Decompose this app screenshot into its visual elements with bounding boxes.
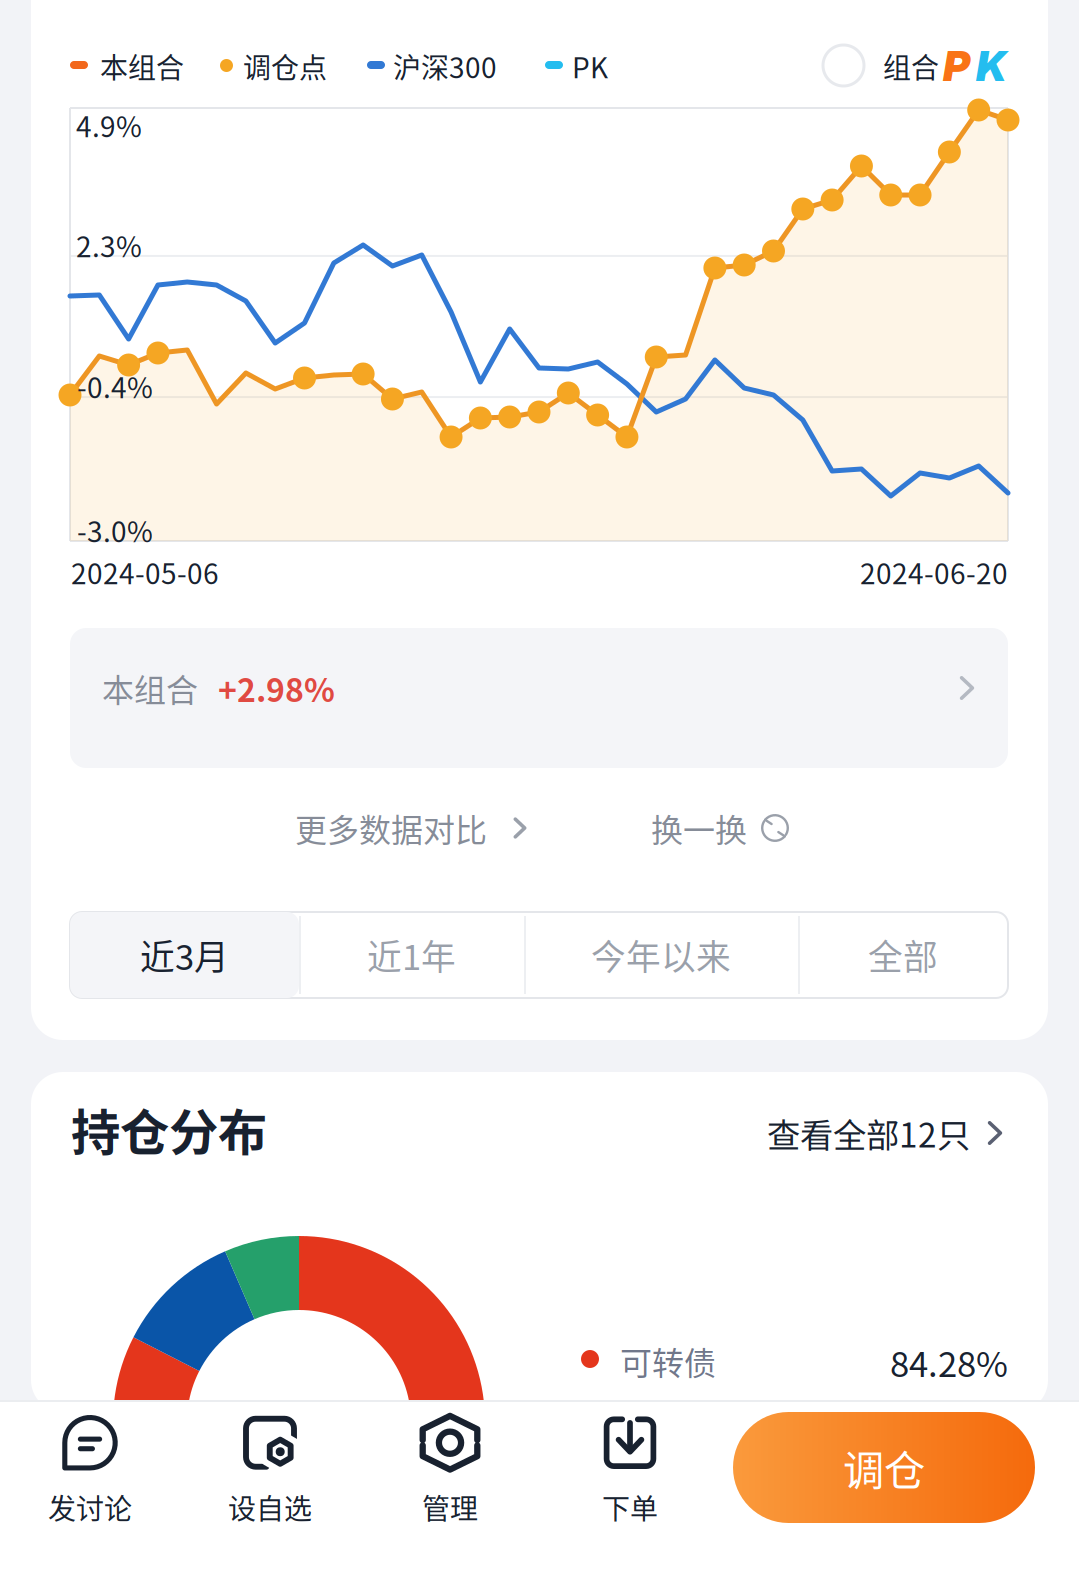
- button[interactable]: 本组合: [70, 628, 1008, 768]
- staticText: 下单: [602, 1487, 658, 1527]
- button[interactable]: 设自选: [180, 1408, 360, 1532]
- button[interactable]: 全部: [798, 912, 1008, 998]
- staticText: 管理: [422, 1487, 478, 1527]
- staticText: 2.3%: [76, 225, 142, 265]
- button[interactable]: 发讨论: [0, 1408, 180, 1532]
- staticText: 更多数据对比: [295, 805, 487, 851]
- staticText: 本组合: [102, 665, 198, 711]
- staticText: 换一换: [651, 805, 747, 851]
- staticText: +2.98%: [218, 665, 335, 711]
- staticText: 组合: [883, 46, 939, 86]
- staticText: -0.4%: [77, 366, 153, 406]
- staticText: 全部: [868, 930, 938, 980]
- staticText: 持仓分布: [71, 1093, 267, 1165]
- staticText: 设自选: [228, 1487, 312, 1527]
- staticText: 可转债: [620, 1338, 716, 1384]
- staticText: P: [943, 41, 970, 91]
- staticText: 今年以来: [591, 930, 731, 980]
- button[interactable]: 今年以来: [524, 912, 798, 998]
- staticText: 4.9%: [76, 105, 142, 145]
- button[interactable]: 更多数据对比: [283, 798, 545, 858]
- button[interactable]: 查看全部12只: [680, 1105, 1010, 1161]
- staticText: 2024-05-06: [71, 552, 219, 592]
- staticText: K: [976, 41, 1006, 91]
- button[interactable]: 换一换: [645, 798, 797, 858]
- button[interactable]: 近1年: [299, 912, 524, 998]
- button[interactable]: 下单: [540, 1408, 720, 1532]
- staticText: PK: [572, 46, 608, 86]
- button[interactable]: 调仓: [733, 1412, 1035, 1523]
- staticText: 查看全部12只: [767, 1109, 970, 1157]
- staticText: 84.28%: [890, 1337, 1008, 1387]
- staticText: 沪深300: [393, 46, 497, 86]
- staticText: 2024-06-20: [860, 552, 1008, 592]
- button[interactable]: 组合: [0, 0, 1079, 110]
- staticText: 近1年: [367, 930, 456, 980]
- button[interactable]: 近3月: [70, 912, 299, 998]
- button[interactable]: 管理: [360, 1408, 540, 1532]
- staticText: -3.0%: [77, 510, 153, 550]
- staticText: 调仓点: [243, 46, 327, 86]
- staticText: 发讨论: [48, 1487, 132, 1527]
- staticText: 近3月: [140, 930, 229, 980]
- staticText: 调仓: [843, 1438, 925, 1497]
- staticText: 本组合: [100, 46, 184, 86]
